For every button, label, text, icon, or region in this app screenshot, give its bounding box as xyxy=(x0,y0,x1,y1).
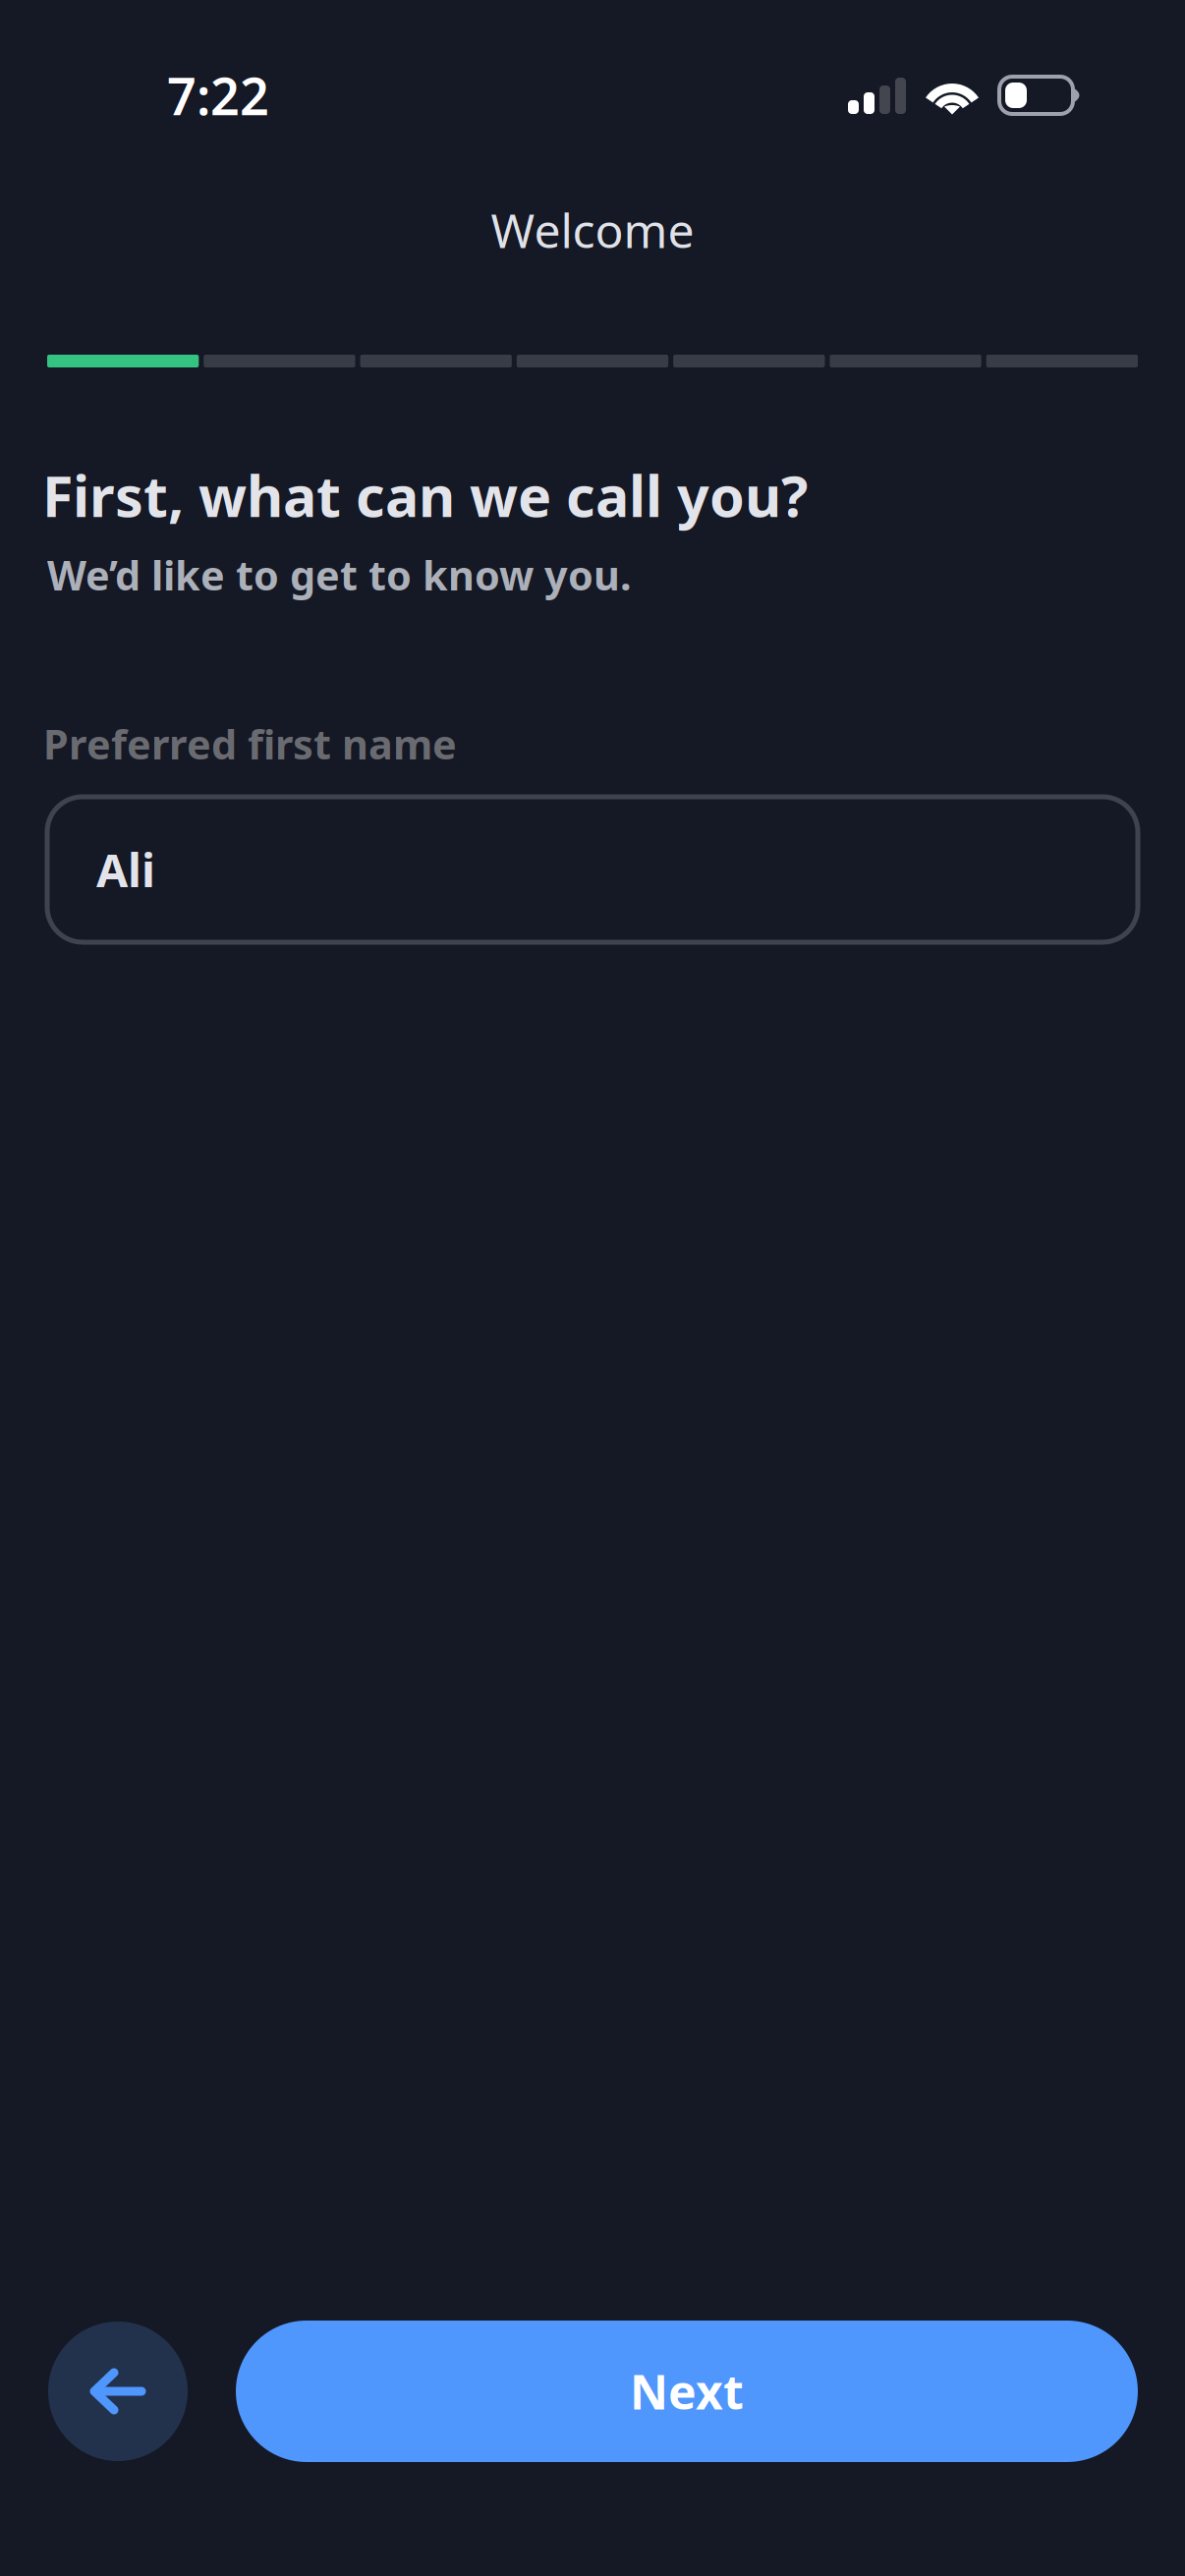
staticText: Welcome xyxy=(491,199,694,261)
button[interactable]: Back xyxy=(47,2321,189,2462)
staticText: 7:22 xyxy=(167,61,269,129)
staticText: Preferred first name xyxy=(43,717,457,771)
button[interactable]: Next xyxy=(236,2321,1138,2462)
staticText: First, what can we call you? xyxy=(42,458,808,532)
staticText: Next xyxy=(630,2360,744,2423)
staticText: Ali xyxy=(96,839,155,900)
staticText: We’d like to get to know you. xyxy=(47,548,632,602)
button[interactable]: Ali xyxy=(47,797,1138,942)
